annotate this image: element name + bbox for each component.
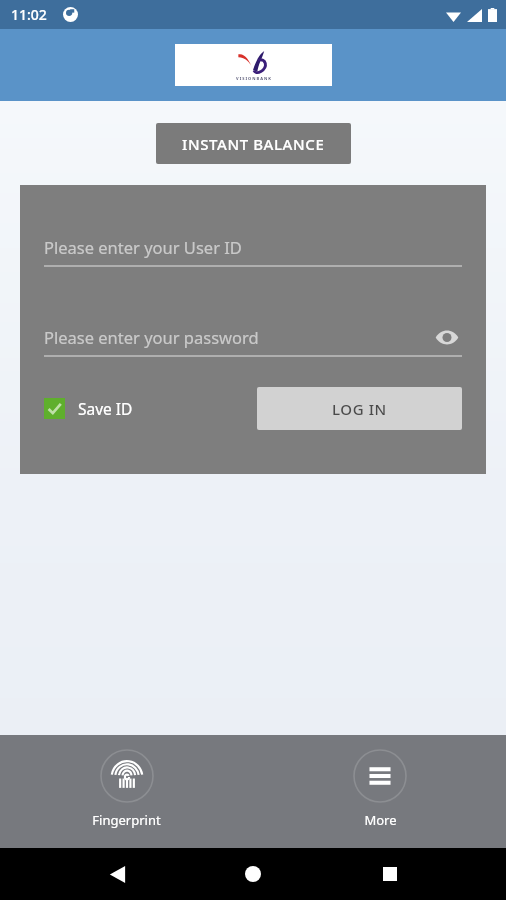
button[interactable]: Please enter your User ID (44, 229, 462, 265)
button[interactable]: LOG IN (257, 387, 462, 430)
staticText: Save ID (78, 398, 133, 419)
staticText: INSTANT BALANCE (182, 134, 325, 154)
staticText: V I S I O N B A N K (236, 76, 272, 81)
staticText: LOG IN (332, 399, 387, 419)
button[interactable]: Back (97, 854, 137, 894)
staticText: Please enter your password (44, 326, 259, 348)
staticText: 11:02 (11, 5, 47, 24)
button[interactable]: Fingerprint login (72, 747, 181, 831)
button[interactable]: More options (333, 747, 427, 831)
button[interactable]: Please enter your password (44, 319, 462, 355)
button[interactable]: Recent apps (370, 854, 410, 894)
button[interactable]: Show password (432, 322, 462, 352)
button[interactable]: Home (233, 854, 273, 894)
staticText: More (364, 811, 397, 829)
staticText: Fingerprint (92, 811, 161, 829)
staticText: Please enter your User ID (44, 236, 242, 258)
button[interactable]: INSTANT BALANCE (156, 123, 351, 164)
button[interactable]: Save ID (44, 398, 133, 419)
